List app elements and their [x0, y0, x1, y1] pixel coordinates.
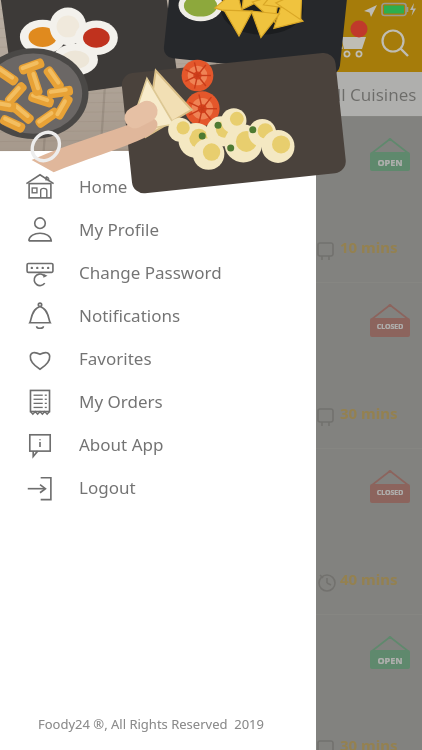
staticText: 10 mins	[340, 237, 398, 257]
staticText: 40 mins	[340, 569, 398, 589]
staticText: Change Password	[79, 261, 222, 284]
staticText: Notifications	[79, 304, 181, 327]
staticText: Foody24 ®, All Rights Reserved 2019	[38, 715, 264, 733]
button[interactable]: My Orders	[0, 380, 316, 423]
staticText: 30 mins	[340, 403, 398, 423]
button[interactable]: Favorites	[0, 337, 316, 380]
button[interactable]: Notifications	[0, 294, 316, 337]
staticText: CLOSED	[370, 322, 410, 332]
staticText: CLOSED	[370, 488, 410, 498]
staticText: OPEN	[370, 654, 410, 666]
staticText: Home	[79, 175, 128, 198]
button[interactable]: Logout	[0, 466, 316, 509]
button[interactable]: Change Password	[0, 251, 316, 294]
button[interactable]: About App	[0, 423, 316, 466]
button[interactable]: Home	[0, 165, 316, 208]
staticText: All Cuisines	[326, 83, 417, 106]
button[interactable]: 30 mins	[0, 283, 422, 448]
staticText: Logout	[79, 476, 136, 499]
staticText: Favorites	[79, 347, 152, 370]
button[interactable]: My Profile	[0, 208, 316, 251]
staticText: My Orders	[79, 390, 163, 413]
button[interactable]: 30 mins	[0, 615, 422, 750]
staticText: 30 mins	[340, 735, 398, 750]
staticText: OPEN	[370, 156, 410, 168]
button[interactable]: 10 mins	[0, 117, 422, 282]
staticText: About App	[79, 433, 164, 456]
staticText: My Profile	[79, 218, 159, 241]
button[interactable]: 40 mins	[0, 449, 422, 614]
